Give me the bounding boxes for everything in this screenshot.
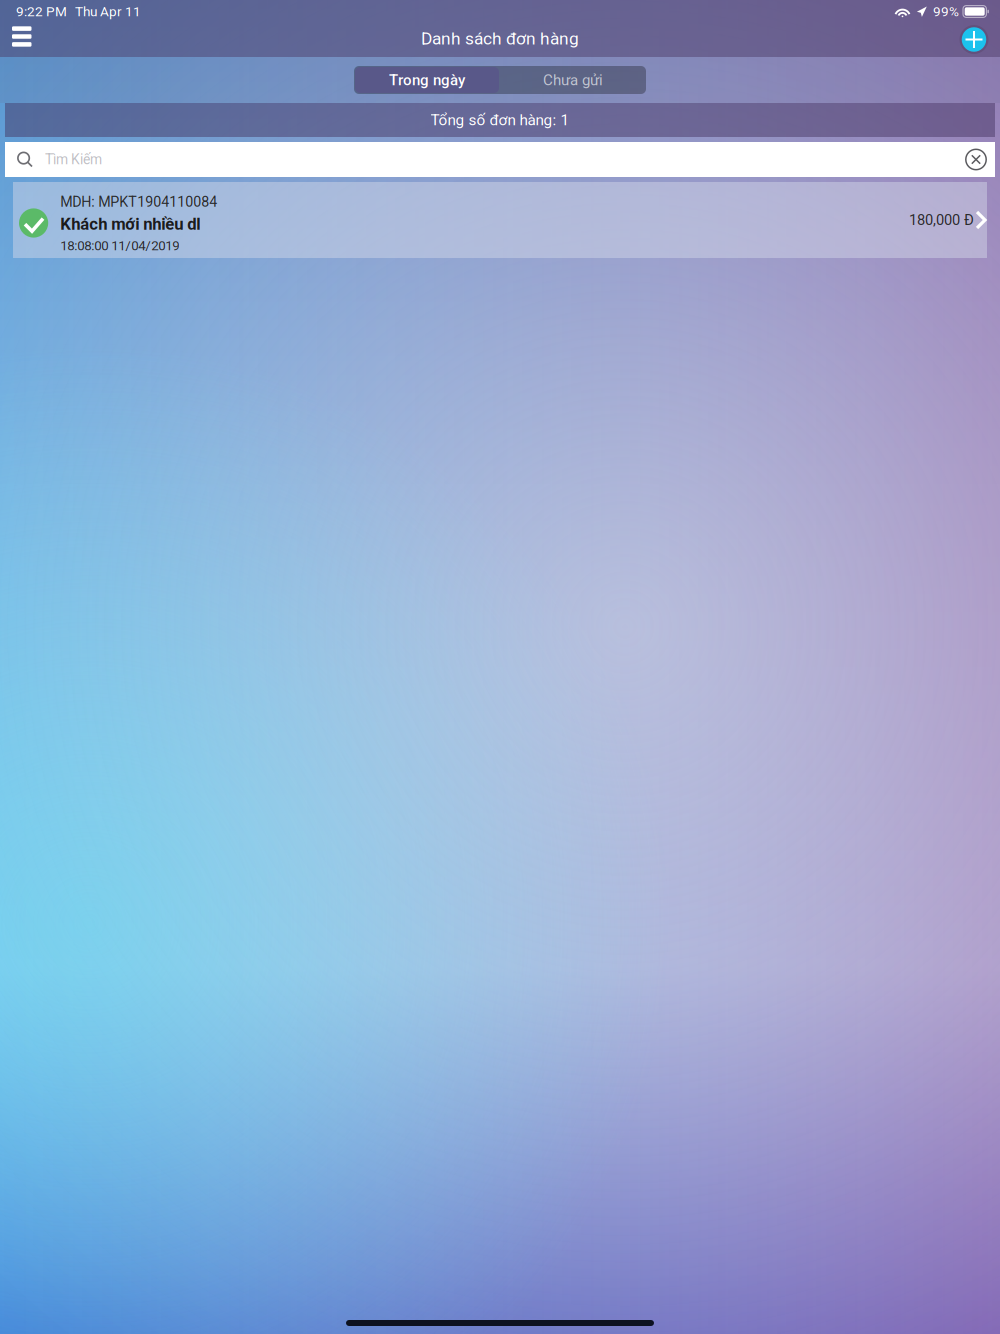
staticText: Tổng số đơn hàng: 1 <box>430 111 569 129</box>
staticText: Khách mới nhiều dl <box>60 214 200 234</box>
staticText: Thu Apr 11 <box>75 3 141 19</box>
staticText: 99% <box>933 3 959 19</box>
button[interactable]: MDH: MPKT1904110084 <box>13 182 987 258</box>
staticText: 180,000 Ð <box>909 211 974 229</box>
staticText: 18:08:00 11/04/2019 <box>60 238 179 253</box>
button[interactable]: Chưa gửi <box>500 66 646 94</box>
button[interactable]: Trong ngày <box>354 66 500 94</box>
button[interactable]: Add order <box>945 23 1000 57</box>
staticText: Tìm Kiếm <box>45 151 102 168</box>
staticText: Trong ngày <box>389 71 465 89</box>
button[interactable]: Clear search <box>965 148 995 170</box>
button[interactable]: Menu <box>0 23 45 57</box>
staticText: 9:22 PM <box>16 3 67 19</box>
staticText: Chưa gửi <box>543 71 603 89</box>
staticText: Danh sách đơn hàng <box>421 28 579 49</box>
staticText: MDH: MPKT1904110084 <box>60 194 217 210</box>
